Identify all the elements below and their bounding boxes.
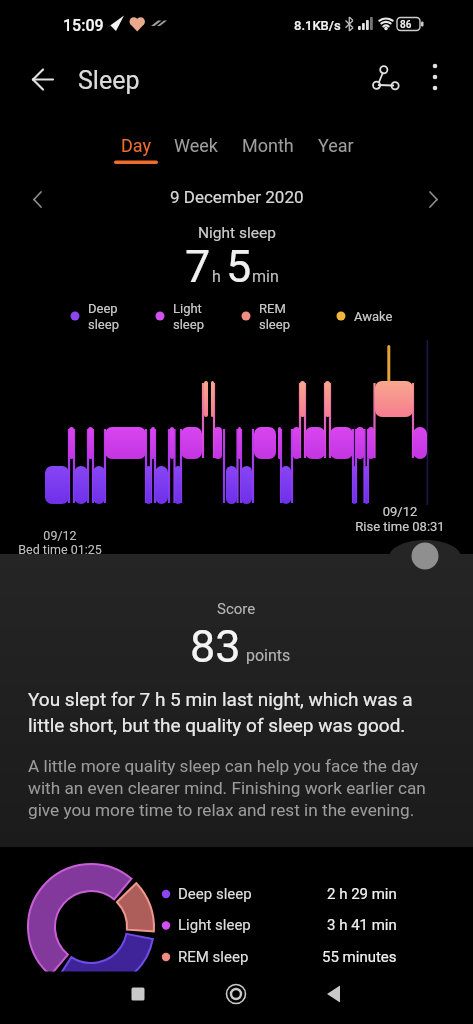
staticText: REM sleep <box>259 301 290 332</box>
staticText: Week <box>174 135 218 156</box>
button[interactable] <box>20 57 64 97</box>
staticText: 5 <box>226 240 252 293</box>
button[interactable]: Day <box>108 128 164 162</box>
staticText: 09/12 Rise time 08:31 <box>355 504 445 534</box>
staticText: give you more time to relax and rest in … <box>28 800 415 820</box>
staticText: Score <box>217 600 256 618</box>
button[interactable]: Year <box>308 128 364 162</box>
button[interactable] <box>212 976 260 1014</box>
staticText: You slept for 7 h 5 min last night, whic… <box>28 688 413 710</box>
staticText: 86 <box>400 19 412 31</box>
staticText: points <box>246 646 291 665</box>
button[interactable] <box>416 180 454 218</box>
button[interactable] <box>418 57 454 97</box>
staticText: 8.1KB/s <box>294 18 341 33</box>
button[interactable] <box>114 976 162 1014</box>
staticText: Sleep <box>78 66 140 95</box>
staticText: Deep sleep <box>178 885 252 903</box>
staticText: Night sleep <box>198 224 276 242</box>
button[interactable]: Month <box>236 128 300 162</box>
staticText: 9 December 2020 <box>170 187 304 207</box>
staticText: h <box>212 267 221 286</box>
staticText: 3 h 41 min <box>327 916 397 934</box>
staticText: 7 <box>185 240 211 293</box>
staticText: little short, but the quality of sleep w… <box>28 714 406 736</box>
staticText: A little more quality sleep can help you… <box>28 756 419 776</box>
staticText: Light sleep <box>178 916 251 934</box>
staticText: min <box>252 267 279 286</box>
button[interactable] <box>403 536 447 576</box>
staticText: Deep sleep <box>88 301 119 332</box>
staticText: Light sleep <box>173 301 204 332</box>
staticText: 55 minutes <box>322 948 397 966</box>
staticText: 83 <box>190 620 241 673</box>
staticText: 09/12 Bed time 01:25 <box>18 528 102 557</box>
staticText: Month <box>242 135 294 156</box>
staticText: REM sleep <box>178 948 249 966</box>
staticText: Year <box>318 135 354 156</box>
staticText: 15:09 <box>63 16 104 35</box>
staticText: Awake <box>354 309 393 324</box>
button[interactable] <box>18 180 56 218</box>
button[interactable] <box>362 57 408 97</box>
staticText: 2 h 29 min <box>327 885 397 903</box>
button[interactable]: Week <box>168 128 224 162</box>
button[interactable] <box>310 976 358 1014</box>
staticText: with an even clearer mind. Finishing wor… <box>28 778 426 798</box>
staticText: Day <box>121 135 151 156</box>
